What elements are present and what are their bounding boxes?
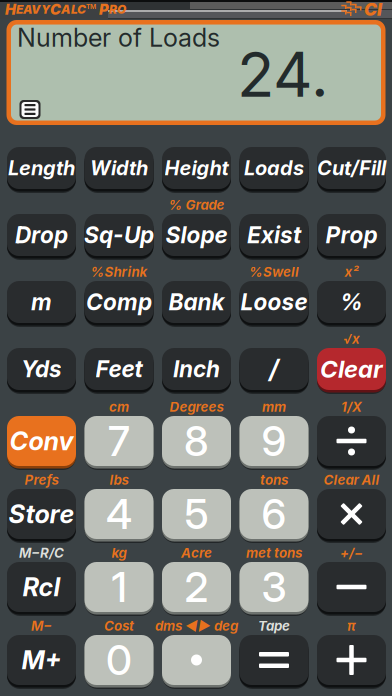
button[interactable]: Menu [17,97,43,121]
button[interactable]: Drop [2,209,81,261]
button[interactable]: 0 [79,630,158,690]
button[interactable]: Height [157,142,236,194]
staticText: H [5,1,16,18]
staticText: 1/X [341,399,362,415]
staticText: π [347,618,356,634]
staticText: 8 [184,416,209,466]
staticText: ALC [61,2,86,17]
button[interactable]: Inch [157,343,236,395]
staticText: P [96,1,109,18]
button[interactable]: % [312,276,391,328]
staticText: met tons [246,545,302,561]
staticText: Yds [21,355,62,383]
staticText: √x [343,331,360,347]
staticText: Tape [258,618,290,634]
staticText: cm [109,399,129,415]
staticText: 2 [184,562,208,612]
staticText: 9 [261,416,286,466]
staticText: Rcl [22,572,60,602]
staticText: TM [86,2,96,11]
staticText: 4 [106,489,132,539]
staticText: Clear All [323,472,379,488]
button[interactable]: / [234,343,313,395]
staticText: Slope [165,221,227,249]
button[interactable]: Feet [79,343,158,395]
button[interactable]: 5 [157,484,236,544]
button[interactable]: Exist [234,209,313,261]
staticText: Loose [240,288,307,316]
button[interactable]: Decimal point [157,630,236,690]
staticText: % [340,288,363,316]
button[interactable]: Width [79,142,158,194]
staticText: dms ◀▶ deg [155,618,238,634]
staticText: Prop [325,221,377,249]
staticText: 3 [261,562,286,612]
staticText: 5 [184,489,208,539]
button[interactable]: 7 [79,411,158,471]
staticText: %Shrink [90,264,147,280]
button[interactable]: Bank [157,276,236,328]
button[interactable]: 8 [157,411,236,471]
button[interactable]: Length [2,142,81,194]
staticText: EAVY [16,2,50,17]
button[interactable]: 1 [79,557,158,617]
staticText: Width [90,156,148,180]
button[interactable]: 2 [157,557,236,617]
staticText: Exist [247,221,301,249]
staticText: Cost [104,618,134,634]
staticText: tons [260,472,288,488]
staticText: C [50,1,61,18]
staticText: 0 [106,635,132,685]
staticText: Prefs [24,472,58,488]
button[interactable]: Clear [312,343,391,395]
staticText: Sq-Up [84,221,154,249]
staticText: Conv [9,426,73,456]
staticText: Feet [95,355,142,383]
staticText: Comp [86,288,152,316]
staticText: Cut/Fill [317,156,386,180]
button[interactable]: Rcl [2,557,81,617]
button[interactable]: Plus [312,630,391,690]
staticText: Bank [168,288,224,316]
button[interactable]: 4 [79,484,158,544]
button[interactable]: Prop [312,209,391,261]
staticText: mm [262,399,286,415]
staticText: CI [364,0,382,20]
button[interactable]: Store [2,484,81,544]
staticText: / [269,354,279,384]
button[interactable]: Sq-Up [79,209,158,261]
button[interactable]: Multiply [312,484,391,544]
staticText: Height [164,156,228,180]
button[interactable]: Equals [234,630,313,690]
staticText: %Swell [249,264,299,280]
button[interactable]: Loose [234,276,313,328]
staticText: Number of Loads [17,22,220,53]
staticText: % Grade [168,197,224,213]
button[interactable]: 9 [234,411,313,471]
staticText: lbs [109,472,128,488]
staticText: Degrees [169,399,223,415]
button[interactable]: 3 [234,557,313,617]
staticText: M−R/C [19,545,64,561]
staticText: M− [31,618,52,634]
staticText: M+ [21,645,61,675]
button[interactable]: m [2,276,81,328]
staticText: Store [8,499,74,529]
button[interactable]: M+ [2,630,81,690]
button[interactable]: Loads [234,142,313,194]
button[interactable]: Slope [157,209,236,261]
staticText: Drop [15,221,68,249]
staticText: x² [344,264,358,280]
button[interactable]: Divide [312,411,391,471]
button[interactable]: 6 [234,484,313,544]
button[interactable]: Comp [79,276,158,328]
staticText: +/− [340,545,363,561]
staticText: Inch [173,355,220,383]
button[interactable]: Conv [2,411,81,471]
staticText: 1 [111,562,126,612]
staticText: 6 [261,489,286,539]
button[interactable]: Yds [2,343,81,395]
staticText: Length [8,156,75,180]
button[interactable]: Minus [312,557,391,617]
button[interactable]: Cut/Fill [312,142,391,194]
